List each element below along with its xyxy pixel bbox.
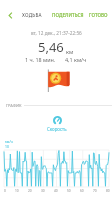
staticText: 40 (54, 189, 58, 193)
staticText: 60 (80, 189, 84, 193)
staticText: ПОДЕЛИТЬСЯ (52, 12, 84, 18)
staticText: 10 (5, 144, 9, 149)
button[interactable]: ПОДЕЛИТЬСЯ (51, 12, 85, 18)
staticText: 5,46 (38, 38, 64, 56)
staticText: 70 (93, 189, 97, 193)
staticText: вт, 12 дек., 21:37-22:56 (31, 30, 82, 36)
staticText: 30 (41, 189, 45, 193)
staticText: км (66, 48, 74, 55)
staticText: 50 (67, 189, 71, 193)
staticText: Скорость (47, 126, 67, 132)
staticText: 10 (15, 189, 19, 193)
button[interactable]: Назад (0, 5, 20, 25)
staticText: 80 (106, 189, 110, 193)
button[interactable]: ГОТОВО (85, 12, 112, 18)
staticText: 20 (28, 189, 32, 193)
staticText: ГРАФИК (6, 103, 22, 108)
staticText: км/ч (5, 139, 13, 144)
staticText: 1 ч. 18 мин. (25, 56, 56, 63)
staticText: 0 (4, 189, 6, 193)
staticText: ГОТОВО (89, 12, 108, 18)
button[interactable]: Скорость (47, 116, 67, 132)
staticText: 4,1 км/ч (65, 56, 87, 63)
staticText: ХОДЬБА (22, 12, 42, 18)
